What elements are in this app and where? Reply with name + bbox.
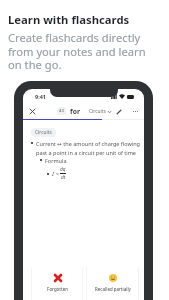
staticText: dt bbox=[61, 174, 66, 181]
staticText: Formula bbox=[45, 157, 67, 164]
staticText: = bbox=[56, 170, 59, 177]
button[interactable]: Circuits bbox=[89, 108, 111, 115]
staticText: Recalled partially bbox=[95, 286, 131, 292]
staticText: Current ↔ the amount of charge flowing p… bbox=[36, 140, 140, 156]
staticText: Learn with flashcards bbox=[8, 12, 130, 27]
staticText: Create flashcards directly from your not… bbox=[8, 30, 146, 72]
staticText: Circuits bbox=[35, 129, 52, 136]
button[interactable]: Recalled partially bbox=[86, 267, 139, 300]
staticText: dq bbox=[60, 166, 66, 173]
staticText: Forgotten bbox=[47, 286, 68, 292]
button[interactable]: More options bbox=[130, 106, 141, 117]
staticText: Circuits bbox=[89, 108, 106, 115]
button[interactable]: Forgotten bbox=[31, 267, 83, 300]
staticText: I bbox=[52, 170, 54, 178]
button[interactable]: Close bbox=[27, 106, 38, 117]
button[interactable]: Edit bbox=[113, 106, 124, 117]
staticText: 43 bbox=[59, 108, 64, 114]
staticText: 9:41 bbox=[35, 93, 46, 100]
staticText: for bbox=[70, 107, 80, 116]
